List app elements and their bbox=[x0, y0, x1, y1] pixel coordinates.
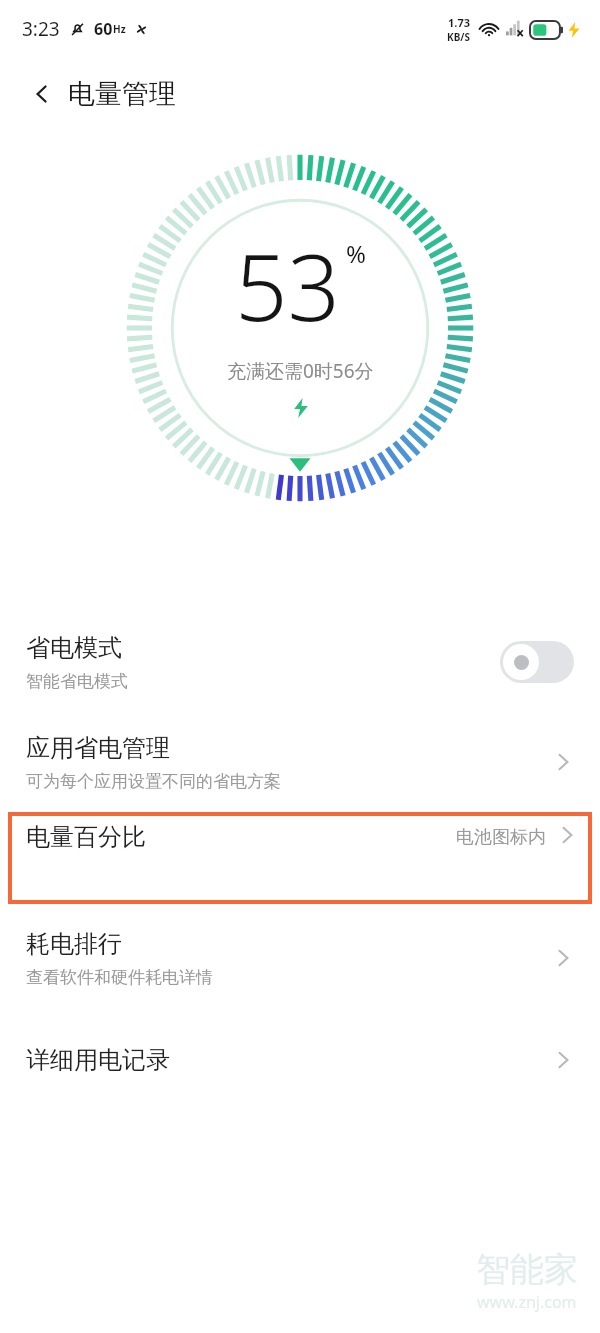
staticText: 电量管理 bbox=[68, 77, 176, 111]
staticText: 电量百分比 bbox=[26, 822, 456, 852]
staticText: 智能家 bbox=[476, 1248, 578, 1291]
button[interactable]: 电量百分比 bbox=[8, 812, 592, 904]
staticText: 详细用电记录 bbox=[26, 1045, 170, 1075]
staticText: 查看软件和硬件耗电详情 bbox=[26, 967, 213, 988]
staticText: www.znj.com bbox=[477, 1291, 577, 1313]
staticText: 省电模式 bbox=[26, 633, 122, 663]
staticText: 53 bbox=[235, 223, 341, 348]
staticText: 可为每个应用设置不同的省电方案 bbox=[26, 771, 281, 792]
staticText: KB/S bbox=[447, 30, 470, 44]
button[interactable]: 耗电排行 bbox=[0, 904, 600, 1012]
button[interactable]: 应用省电管理 bbox=[0, 712, 600, 812]
staticText: 3:23 bbox=[22, 16, 60, 42]
button[interactable]: 省电模式 bbox=[0, 612, 600, 712]
staticText: 1.73 bbox=[448, 15, 470, 30]
staticText: % bbox=[346, 237, 366, 270]
staticText: Hz bbox=[113, 22, 126, 36]
button[interactable]: 详细用电记录 bbox=[0, 1012, 600, 1108]
staticText: 智能省电模式 bbox=[26, 671, 128, 692]
button[interactable]: Back bbox=[20, 72, 64, 116]
staticText: 耗电排行 bbox=[26, 929, 122, 959]
staticText: 应用省电管理 bbox=[26, 733, 170, 763]
button[interactable]: 省电模式 toggle bbox=[500, 641, 574, 683]
staticText: 充满还需0时56分 bbox=[227, 358, 374, 384]
staticText: 60 bbox=[94, 18, 113, 40]
staticText: 电池图标内 bbox=[456, 826, 546, 849]
